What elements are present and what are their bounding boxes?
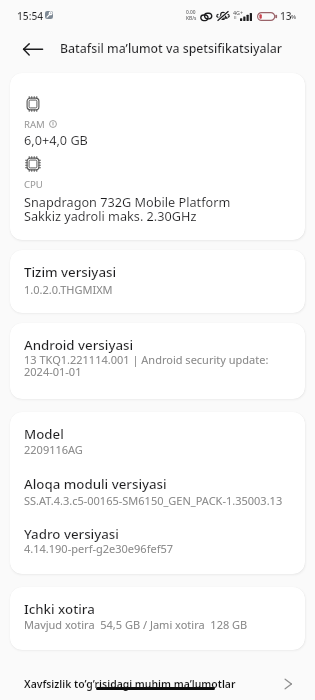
staticText: Model (24, 425, 64, 443)
staticText: ıı (234, 14, 237, 21)
staticText: % (291, 13, 297, 21)
staticText: 13 TKQ1.221114.001 | Android security up… (24, 352, 269, 367)
staticText: Yadro versiyasi (24, 525, 119, 543)
button[interactable]: Back (14, 34, 44, 64)
staticText: 0.00 (186, 9, 196, 16)
staticText: CPU (24, 178, 43, 191)
staticText: KB/s (186, 15, 197, 22)
staticText: RAM (24, 118, 45, 131)
staticText: 4.14.190-perf-g2e30e96fef57 (24, 541, 174, 556)
staticText: Snapdragon 732G Mobile Platform (24, 193, 231, 210)
staticText: Aloqa moduli versiyasi (24, 475, 167, 493)
staticText: 13 (280, 9, 292, 23)
staticText: Ichki xotira (24, 600, 95, 618)
staticText: Xavfsizlik to’g’risidagi muhim ma’lumotl… (24, 677, 236, 691)
staticText: Android versiyasi (24, 336, 134, 354)
staticText: Batafsil ma’lumot va spetsifikatsiyalar (60, 40, 283, 57)
staticText: Sakkiz yadroli maks. 2.30GHz (24, 207, 197, 224)
staticText: 1.0.2.0.THGMIXM (24, 282, 113, 297)
staticText: 6,0+4,0 GB (24, 131, 88, 148)
staticText: Mavjud xotira 54,5 GB / Jami xotira 128 … (24, 617, 248, 632)
staticText: 4G+ (233, 9, 244, 16)
staticText: 2024-01-01 (24, 364, 82, 379)
staticText: 2209116AG (24, 442, 83, 457)
staticText: SS.AT.4.3.c5-00165-SM6150_GEN_PACK-1.350… (24, 493, 283, 508)
button[interactable]: Xavfsizlik to’g’risidagi muhim ma’lumotl… (0, 660, 315, 700)
staticText: Tizim versiyasi (24, 263, 117, 281)
staticText: 15:54 (17, 9, 44, 23)
